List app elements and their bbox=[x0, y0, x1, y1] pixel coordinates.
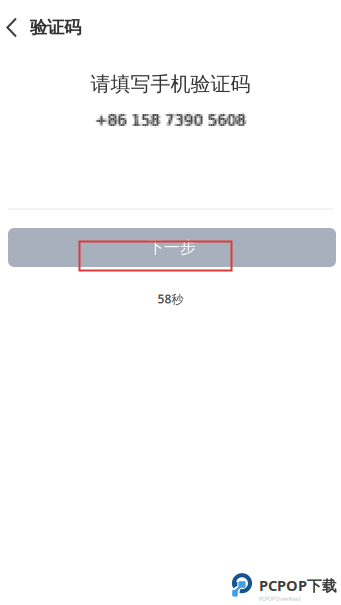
staticText: 验证码 bbox=[30, 17, 81, 38]
staticText: PCPOP Download bbox=[259, 595, 300, 602]
staticText: 请填写手机验证码 bbox=[90, 72, 250, 96]
button[interactable]: 验证码 bbox=[30, 5, 81, 49]
staticText: 58秒 bbox=[157, 291, 183, 307]
button[interactable]: Back bbox=[6, 5, 30, 49]
staticText: 下一步 bbox=[148, 238, 196, 257]
button[interactable]: 下一步 bbox=[8, 228, 336, 267]
staticText: PCPOP下载 bbox=[259, 576, 337, 595]
